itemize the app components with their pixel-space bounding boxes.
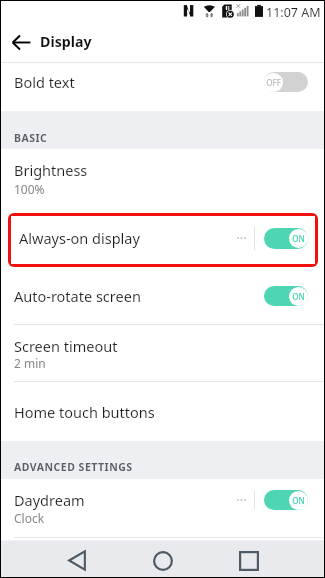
staticText: ON bbox=[292, 495, 305, 506]
button[interactable]: Home bbox=[142, 542, 184, 578]
staticText: OFF bbox=[266, 77, 281, 88]
button[interactable]: Home touch buttons bbox=[1, 382, 324, 441]
staticText: Clock bbox=[14, 510, 45, 526]
button[interactable]: Switch on bbox=[264, 228, 308, 249]
staticText: 2 min bbox=[14, 355, 46, 371]
staticText: Display bbox=[40, 32, 92, 51]
staticText: Daydream bbox=[14, 490, 85, 510]
button[interactable]: Auto-rotate screen bbox=[1, 267, 324, 325]
button[interactable]: Recent apps bbox=[228, 542, 270, 578]
staticText: Always-on display bbox=[19, 228, 237, 248]
staticText: BASIC bbox=[14, 131, 48, 145]
button[interactable]: Switch on bbox=[264, 286, 308, 306]
button[interactable]: Daydream bbox=[1, 479, 324, 538]
button[interactable]: Back bbox=[8, 29, 34, 55]
button[interactable]: Screen timeout bbox=[1, 325, 324, 382]
button[interactable]: Switch off bbox=[264, 72, 308, 92]
staticText: Bold text bbox=[14, 72, 75, 92]
staticText: Home touch buttons bbox=[14, 402, 155, 422]
staticText: 100% bbox=[14, 181, 45, 197]
staticText: Screen timeout bbox=[14, 336, 118, 356]
staticText: 11:07 AM bbox=[266, 4, 321, 21]
button[interactable]: Brightness bbox=[1, 149, 324, 213]
staticText: ON bbox=[292, 291, 305, 302]
button[interactable]: Back bbox=[56, 542, 98, 578]
staticText: Brightness bbox=[14, 160, 88, 180]
staticText: Auto-rotate screen bbox=[14, 286, 141, 306]
button[interactable]: Switch on bbox=[264, 490, 308, 510]
button[interactable]: Always-on display bbox=[11, 216, 315, 264]
staticText: ADVANCED SETTINGS bbox=[14, 460, 133, 474]
button[interactable]: Bold text bbox=[1, 63, 324, 111]
staticText: ON bbox=[292, 233, 305, 244]
